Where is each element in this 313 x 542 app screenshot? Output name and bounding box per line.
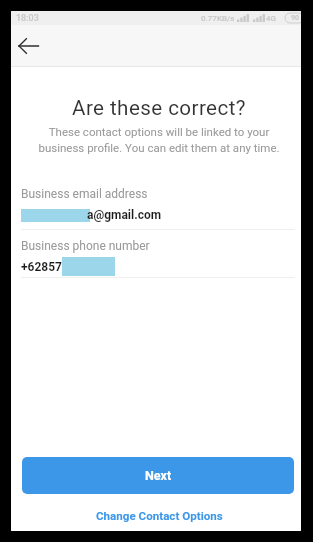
staticText: Business email address <box>21 187 148 201</box>
staticText: Business phone number <box>21 239 150 253</box>
button[interactable]: Next <box>22 457 294 494</box>
staticText: Are these correct? <box>17 96 301 120</box>
staticText: 90 <box>291 14 299 22</box>
button[interactable]: Back <box>12 29 45 62</box>
staticText: +62857 <box>21 260 62 274</box>
staticText: 4G <box>266 14 276 23</box>
staticText: These contact options will be linked to … <box>17 125 301 155</box>
staticText: 18:03 <box>16 13 39 24</box>
button[interactable]: Change Contact Options <box>17 509 301 523</box>
staticText: Change Contact Options <box>96 509 223 523</box>
staticText: Next <box>145 468 172 483</box>
staticText: 0.77KB/s <box>201 14 235 23</box>
staticText: a@gmail.com <box>87 208 162 222</box>
